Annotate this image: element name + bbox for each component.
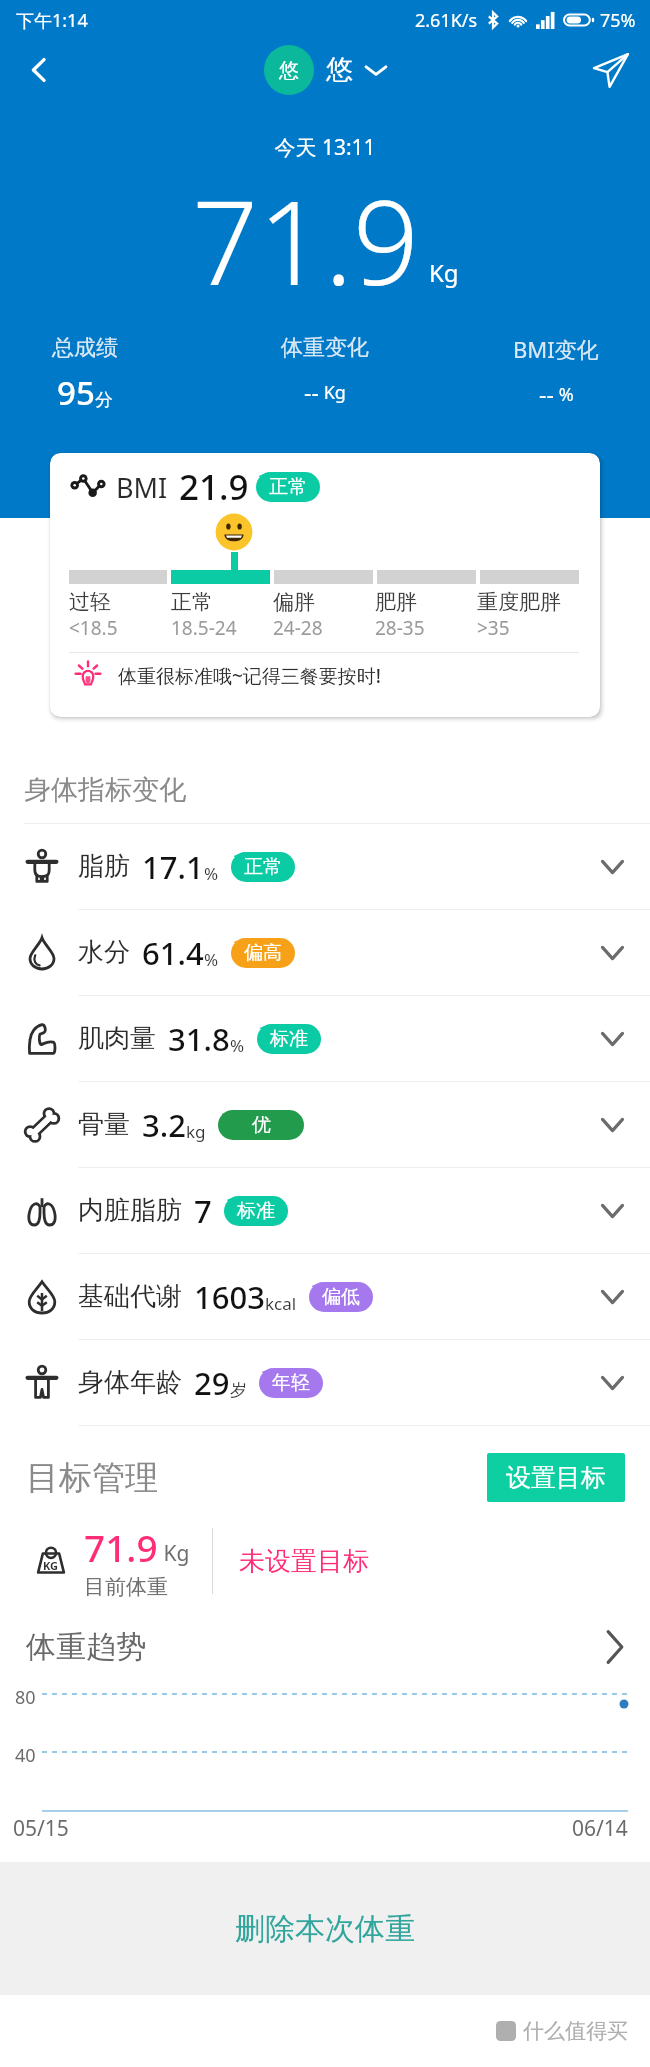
staticText: 正常 <box>171 589 213 615</box>
staticText: KG <box>43 1558 59 1573</box>
staticText: 正常 <box>269 475 307 499</box>
staticText: 偏胖 <box>273 589 315 615</box>
staticText: >35 <box>477 615 510 641</box>
staticText: 31.8 <box>168 1018 230 1060</box>
staticText: 悠 <box>326 53 353 87</box>
staticText: BMI <box>116 469 168 506</box>
staticText: 40 <box>15 1743 36 1768</box>
staticText: % <box>204 948 219 971</box>
button[interactable]: Back <box>14 45 64 95</box>
staticText: 肥胖 <box>375 589 417 615</box>
staticText: 29 <box>194 1362 230 1404</box>
button[interactable]: 体重趋势 <box>26 1611 624 1683</box>
staticText: 体重趋势 <box>26 1628 146 1666</box>
staticText: 悠 <box>279 58 299 83</box>
staticText: 肌肉量 <box>78 1022 156 1055</box>
staticText: 体重变化 <box>281 334 369 362</box>
staticText: 61.4 <box>142 932 204 974</box>
staticText: 80 <box>15 1685 36 1710</box>
staticText: 3.2 <box>142 1104 186 1146</box>
staticText: Kg <box>319 380 346 405</box>
staticText: 分 <box>95 389 113 412</box>
staticText: kcal <box>265 1292 297 1315</box>
button[interactable]: 身体年龄 <box>0 1340 650 1425</box>
staticText: 岁 <box>230 1380 247 1401</box>
staticText: 内脏脂肪 <box>78 1194 182 1227</box>
staticText: 05/15 <box>13 1814 69 1843</box>
staticText: 什么值得买 <box>523 2018 628 2044</box>
button[interactable]: 基础代谢 <box>0 1254 650 1339</box>
staticText: 21.9 <box>179 463 249 511</box>
staticText: % <box>204 862 219 885</box>
staticText: 总成绩 <box>52 334 118 362</box>
staticText: Kg <box>429 256 459 289</box>
staticText: kg <box>186 1120 206 1143</box>
staticText: 95 <box>57 370 95 415</box>
button[interactable]: BMI <box>50 453 600 717</box>
button[interactable]: 骨量 <box>0 1082 650 1167</box>
staticText: 目标管理 <box>26 1457 158 1499</box>
button[interactable]: Share <box>584 43 638 97</box>
staticText: 偏高 <box>244 941 282 965</box>
staticText: 目前体重 <box>84 1574 168 1600</box>
staticText: 过轻 <box>69 589 111 615</box>
staticText: 24-28 <box>273 615 323 641</box>
staticText: 身体年龄 <box>78 1366 182 1399</box>
staticText: 优 <box>252 1113 271 1137</box>
staticText: 骨量 <box>78 1108 130 1141</box>
staticText: 正常 <box>244 855 282 879</box>
staticText: -- <box>304 376 319 407</box>
staticText: 标准 <box>270 1027 308 1051</box>
staticText: 75% <box>600 8 636 33</box>
staticText: 1603 <box>194 1276 265 1318</box>
button[interactable]: 内脏脂肪 <box>0 1168 650 1253</box>
staticText: 身体指标变化 <box>24 773 186 807</box>
staticText: 脂肪 <box>78 850 130 883</box>
button[interactable]: 脂肪 <box>0 824 650 909</box>
staticText: Kg <box>158 1539 190 1568</box>
staticText: 17.1 <box>142 846 204 888</box>
staticText: 28-35 <box>375 615 425 641</box>
button[interactable]: 水分 <box>0 910 650 995</box>
staticText: 06/14 <box>572 1814 628 1843</box>
staticText: 18.5-24 <box>171 615 237 641</box>
staticText: 71.9 <box>192 161 420 319</box>
staticText: 删除本次体重 <box>235 1910 415 1948</box>
staticText: 未设置目标 <box>239 1545 369 1578</box>
staticText: 标准 <box>237 1199 275 1223</box>
staticText: <18.5 <box>69 615 118 641</box>
button[interactable]: 肌肉量 <box>0 996 650 1081</box>
staticText: -- <box>539 378 554 409</box>
button[interactable]: 删除本次体重 <box>0 1862 650 1995</box>
staticText: 设置目标 <box>506 1462 606 1493</box>
staticText: 重度肥胖 <box>477 589 561 615</box>
staticText: 71.9 <box>84 1522 158 1572</box>
button[interactable]: 设置目标 <box>487 1453 625 1502</box>
staticText: 今天 13:11 <box>0 133 650 162</box>
staticText: 7 <box>194 1190 212 1232</box>
staticText: 2.61K/s <box>415 8 478 33</box>
staticText: % <box>230 1034 245 1057</box>
staticText: BMI变化 <box>513 334 599 364</box>
staticText: 年轻 <box>272 1371 310 1395</box>
staticText: 体重很标准哦~记得三餐要按时! <box>118 663 382 689</box>
staticText: 基础代谢 <box>78 1280 182 1313</box>
staticText: 水分 <box>78 936 130 969</box>
staticText: 下午1:14 <box>16 8 88 33</box>
staticText: 偏低 <box>322 1285 360 1309</box>
button[interactable]: 悠 <box>264 45 387 95</box>
staticText: % <box>554 382 574 407</box>
